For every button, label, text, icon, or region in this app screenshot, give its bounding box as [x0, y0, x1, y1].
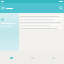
button[interactable]: Featured panel: [0, 13, 19, 51]
button[interactable]: [20, 24, 63, 26]
button[interactable]: Open navigation menu: [1, 6, 5, 10]
button[interactable]: [20, 15, 63, 17]
button[interactable]: [20, 21, 63, 23]
button[interactable]: [20, 18, 63, 20]
button[interactable]: Home: [0, 51, 22, 64]
button[interactable]: Search: [59, 6, 63, 10]
button[interactable]: [20, 27, 63, 29]
